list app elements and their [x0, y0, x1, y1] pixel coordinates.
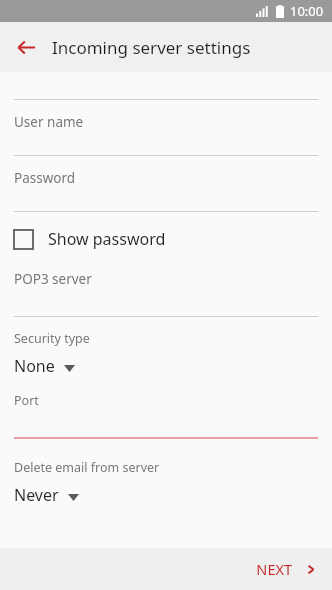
- staticText: User name: [14, 113, 84, 131]
- staticText: Incoming server settings: [52, 36, 251, 59]
- staticText: Delete email from server: [14, 459, 160, 476]
- button[interactable]: Show password: [0, 222, 332, 256]
- button[interactable]: User name: [0, 100, 332, 155]
- staticText: NEXT: [256, 559, 292, 579]
- staticText: Password: [14, 169, 76, 187]
- button[interactable]: None: [0, 353, 332, 379]
- button[interactable]: POP3 server: [0, 270, 332, 316]
- button[interactable]: Back: [4, 25, 48, 69]
- staticText: Never: [14, 484, 59, 506]
- staticText: None: [14, 355, 55, 377]
- staticText: Port: [14, 392, 39, 409]
- button[interactable]: Never: [0, 482, 332, 508]
- staticText: Show password: [48, 228, 166, 250]
- staticText: Security type: [14, 330, 90, 347]
- staticText: 10:00: [290, 2, 324, 20]
- staticText: POP3 server: [14, 270, 92, 288]
- button[interactable]: NEXT: [183, 548, 332, 590]
- button[interactable]: Password: [0, 156, 332, 211]
